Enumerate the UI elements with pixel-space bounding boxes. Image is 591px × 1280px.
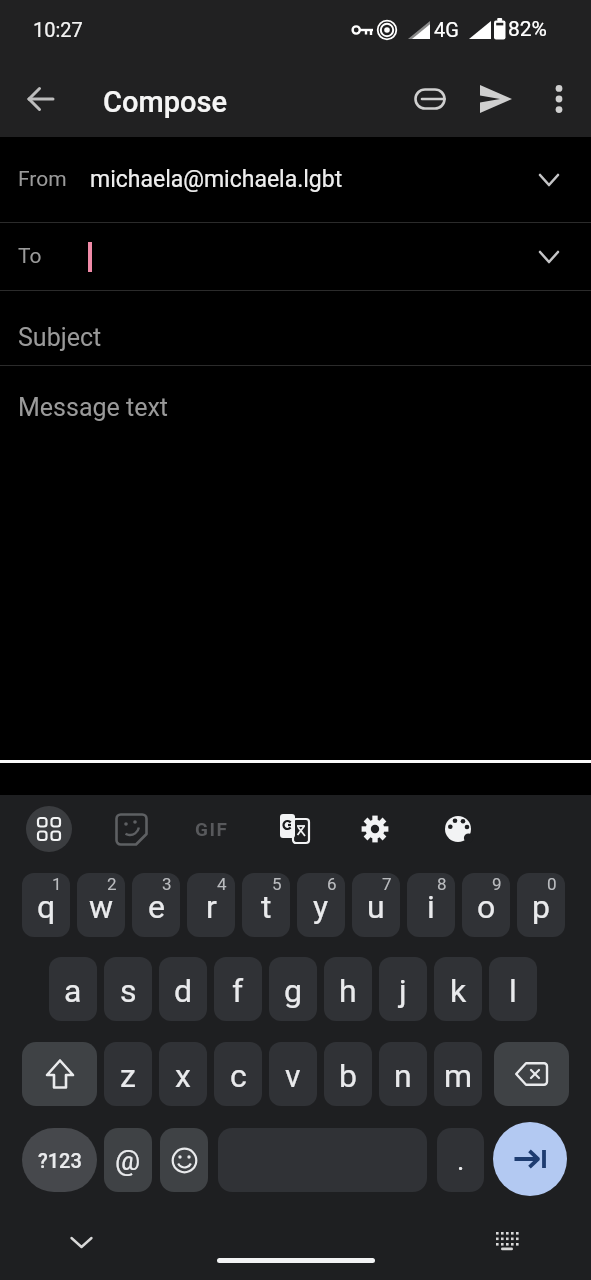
button[interactable] [277, 810, 313, 848]
button[interactable] [493, 1122, 567, 1196]
staticText: l [509, 972, 517, 1010]
staticText: d [174, 972, 193, 1010]
button[interactable]: e [132, 873, 180, 937]
staticText: From [18, 167, 67, 192]
staticText: 4 [217, 874, 227, 894]
staticText: Subject [18, 323, 102, 352]
button[interactable]: k [434, 957, 482, 1021]
button[interactable] [26, 806, 72, 852]
button[interactable]: v [269, 1042, 317, 1106]
staticText: z [120, 1057, 136, 1095]
staticText: a [64, 972, 82, 1010]
staticText: f [232, 972, 244, 1010]
button[interactable]: h [324, 957, 372, 1021]
button[interactable] [546, 81, 572, 117]
staticText: j [399, 972, 407, 1010]
staticText: p [532, 888, 550, 926]
staticText: t [261, 888, 272, 926]
button[interactable]: m [434, 1042, 482, 1106]
staticText: @ [115, 1144, 141, 1177]
button[interactable]: s [104, 957, 152, 1021]
staticText: m [444, 1057, 473, 1095]
button[interactable] [358, 812, 392, 846]
staticText: n [394, 1057, 412, 1095]
button[interactable]: ?123 [22, 1128, 97, 1192]
staticText: h [339, 972, 357, 1010]
staticText: 3 [162, 874, 172, 894]
button[interactable] [217, 1258, 375, 1263]
staticText: 10:27 [33, 18, 83, 41]
button[interactable]: o [462, 873, 510, 937]
staticText: 1 [52, 874, 62, 894]
staticText: ?123 [38, 1149, 82, 1172]
staticText: q [37, 888, 56, 926]
staticText: 0 [547, 874, 557, 894]
staticText: e [148, 888, 165, 926]
staticText: v [285, 1057, 301, 1095]
button[interactable]: @ [104, 1128, 152, 1192]
staticText: g [284, 972, 302, 1010]
button[interactable] [492, 1226, 522, 1256]
button[interactable]: f [214, 957, 262, 1021]
staticText: w [89, 888, 114, 926]
button[interactable]: d [159, 957, 207, 1021]
staticText: GIF [195, 818, 229, 840]
button[interactable]: x [159, 1042, 207, 1106]
button[interactable]: z [104, 1042, 152, 1106]
staticText: Message text [18, 393, 168, 422]
button[interactable] [412, 81, 448, 117]
staticText: u [367, 888, 385, 926]
button[interactable]: p [517, 873, 565, 937]
button[interactable] [0, 291, 591, 365]
staticText: 6 [327, 874, 337, 894]
button[interactable]: w [77, 873, 125, 937]
staticText: michaela@michaela.lgbt [90, 166, 343, 193]
button[interactable]: j [379, 957, 427, 1021]
button[interactable] [60, 1227, 102, 1257]
button[interactable]: . [437, 1128, 484, 1192]
button[interactable] [478, 81, 514, 117]
button[interactable]: i [407, 873, 455, 937]
staticText: c [230, 1057, 247, 1095]
staticText: 7 [382, 874, 392, 894]
staticText: o [477, 888, 496, 926]
button[interactable] [440, 812, 476, 846]
staticText: k [450, 972, 467, 1010]
staticText: x [175, 1057, 191, 1095]
staticText: y [313, 888, 329, 926]
staticText: 4G [434, 18, 459, 41]
button[interactable]: g [269, 957, 317, 1021]
staticText: Compose [103, 85, 228, 119]
button[interactable] [0, 366, 591, 761]
button[interactable]: r [187, 873, 235, 937]
staticText: s [120, 972, 137, 1010]
staticText: r [206, 888, 217, 926]
button[interactable]: a [49, 957, 97, 1021]
staticText: b [339, 1057, 357, 1095]
button[interactable]: q [22, 873, 70, 937]
staticText: 82% [508, 17, 547, 42]
button[interactable]: y [297, 873, 345, 937]
button[interactable]: b [324, 1042, 372, 1106]
button[interactable]: c [214, 1042, 262, 1106]
button[interactable] [0, 137, 591, 222]
staticText: 8 [437, 874, 447, 894]
staticText: i [427, 888, 435, 926]
staticText: To [18, 244, 42, 269]
button[interactable]: GIF [186, 812, 238, 846]
button[interactable] [0, 223, 591, 290]
button[interactable] [160, 1128, 208, 1192]
button[interactable] [112, 810, 150, 848]
button[interactable]: t [242, 873, 290, 937]
button[interactable] [494, 1042, 569, 1106]
button[interactable]: n [379, 1042, 427, 1106]
staticText: 2 [107, 874, 117, 894]
button[interactable] [22, 1042, 97, 1106]
staticText: 5 [272, 874, 282, 894]
button[interactable] [26, 84, 56, 114]
button[interactable]: u [352, 873, 400, 937]
staticText: 9 [492, 874, 502, 894]
staticText: . [457, 1144, 465, 1177]
button[interactable]: l [489, 957, 537, 1021]
